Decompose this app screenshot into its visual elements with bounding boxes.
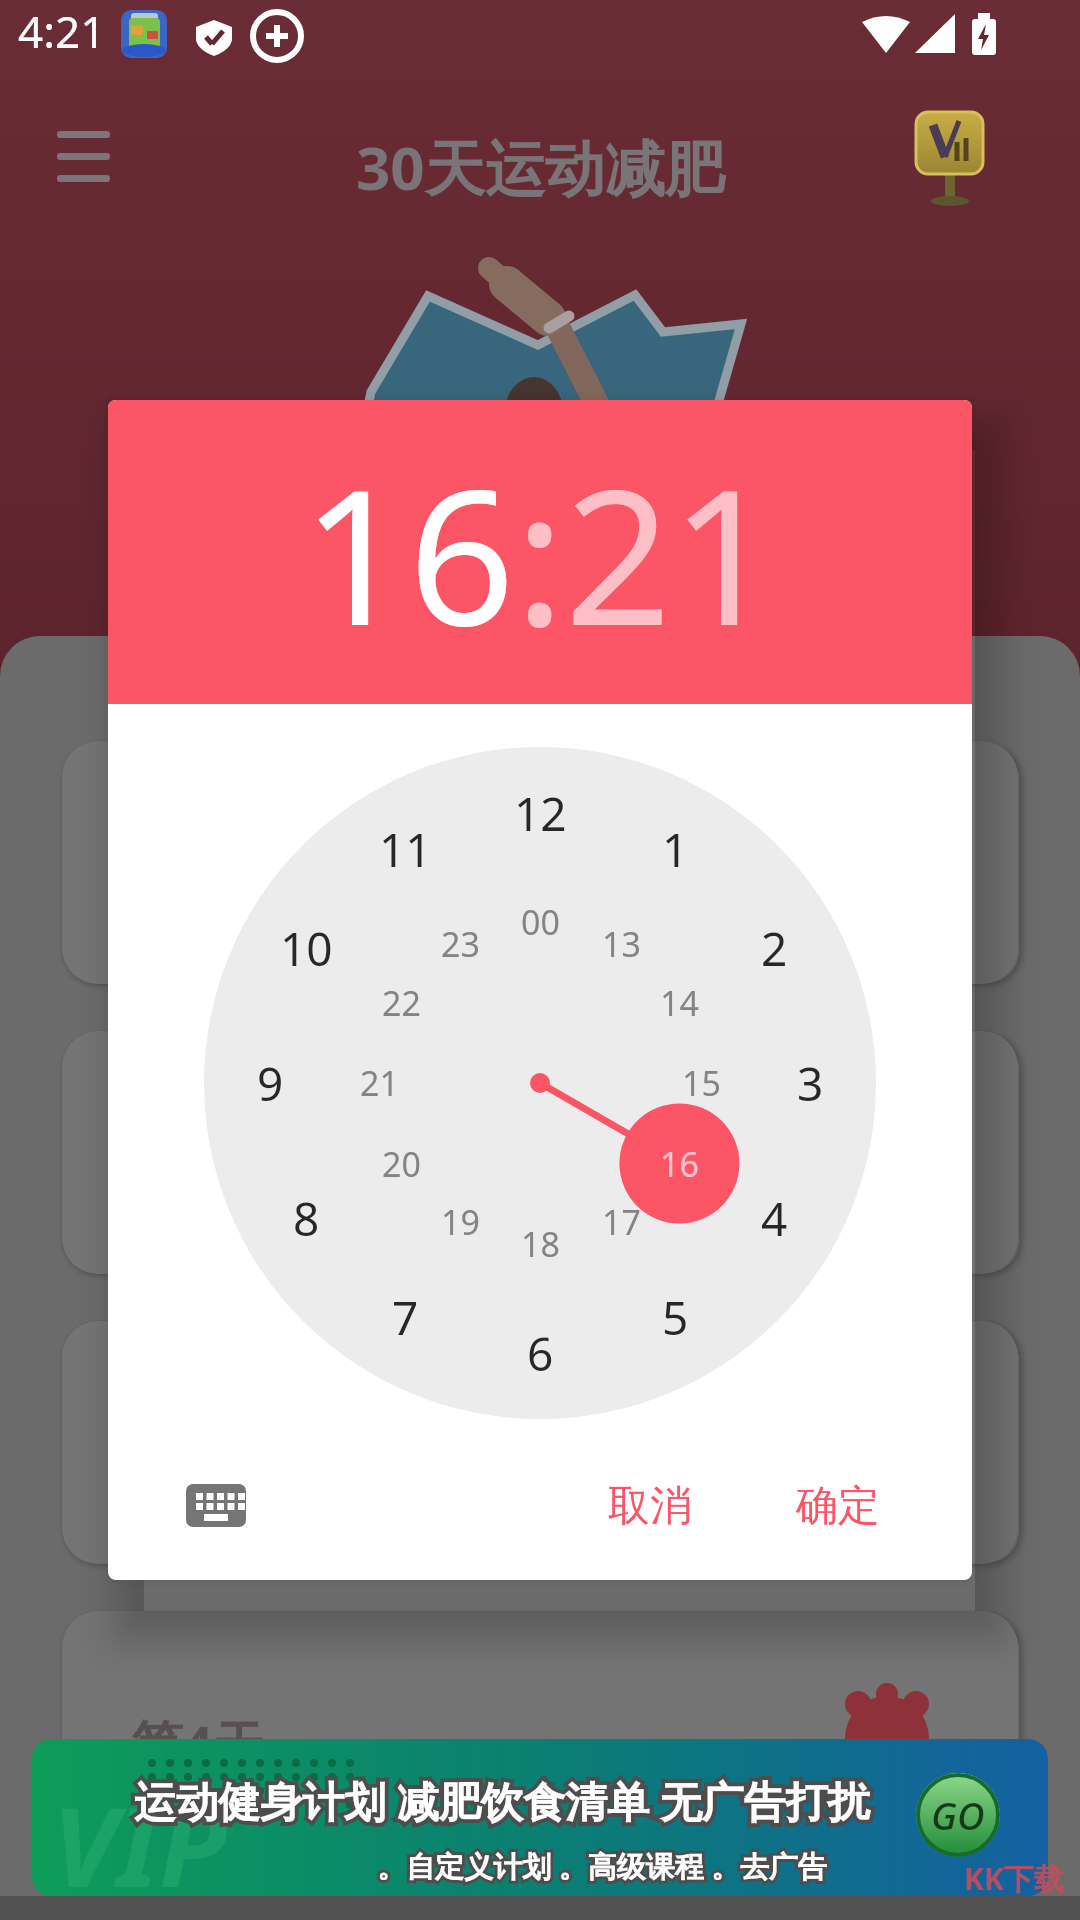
staticText: 11 xyxy=(379,818,432,881)
staticText: 7 xyxy=(392,1286,419,1349)
staticText: 5 xyxy=(662,1286,689,1349)
staticText: 13 xyxy=(602,921,641,967)
button[interactable] xyxy=(62,1611,1018,1854)
button[interactable]: GO xyxy=(916,1773,1000,1857)
staticText: 1 xyxy=(662,818,689,881)
button[interactable]: VIP xyxy=(32,1739,1048,1896)
staticText: 8 xyxy=(293,1187,320,1250)
staticText: 运动健身计划 减肥饮食清单 无广告打扰 xyxy=(134,1772,870,1829)
button[interactable] xyxy=(62,1321,1018,1564)
staticText: 4 xyxy=(761,1187,788,1250)
staticText: 2 xyxy=(761,917,788,980)
staticText: 14 xyxy=(660,980,699,1026)
button[interactable] xyxy=(170,1464,270,1548)
staticText: KK下载 xyxy=(964,1858,1064,1899)
staticText: 19 xyxy=(441,1199,480,1245)
staticText: VIP xyxy=(52,1769,227,1896)
staticText: 23 xyxy=(441,921,480,967)
staticText: 21 xyxy=(360,1060,399,1106)
staticText: 运动健身计划 减肥饮食清单 无广告打扰 xyxy=(134,1772,870,1829)
staticText: 18 xyxy=(521,1221,560,1267)
staticText: GO xyxy=(931,1789,985,1841)
button[interactable] xyxy=(62,741,1018,984)
staticText: 16 xyxy=(660,1141,699,1187)
staticText: 30天运动减肥 xyxy=(356,126,725,208)
staticText: 6 xyxy=(527,1322,554,1385)
staticText: 。自定义计划 。高级课程 。去广告 xyxy=(377,1846,828,1886)
staticText: 4:21 xyxy=(18,1,106,61)
button[interactable] xyxy=(916,112,986,206)
button[interactable]: 取消 xyxy=(560,1461,740,1551)
staticText: 第4天 xyxy=(131,1708,265,1779)
staticText: 20 xyxy=(382,1141,421,1187)
staticText: 15 xyxy=(682,1060,721,1106)
staticText: 22 xyxy=(382,980,421,1026)
staticText: 17 xyxy=(602,1199,641,1245)
staticText: 3 xyxy=(797,1052,824,1115)
staticText: 取消 xyxy=(608,1480,692,1533)
staticText: 10 xyxy=(280,917,333,980)
button[interactable] xyxy=(62,1031,1018,1274)
button[interactable] xyxy=(45,120,125,190)
button[interactable]: 确定 xyxy=(748,1461,928,1551)
staticText: 00 xyxy=(521,899,560,945)
staticText: 12 xyxy=(514,782,567,845)
staticText: 。自定义计划 。高级课程 。去广告 xyxy=(377,1846,828,1886)
staticText: 9 xyxy=(257,1052,284,1115)
staticText: 16:21 xyxy=(302,426,778,679)
staticText: 确定 xyxy=(796,1480,880,1533)
